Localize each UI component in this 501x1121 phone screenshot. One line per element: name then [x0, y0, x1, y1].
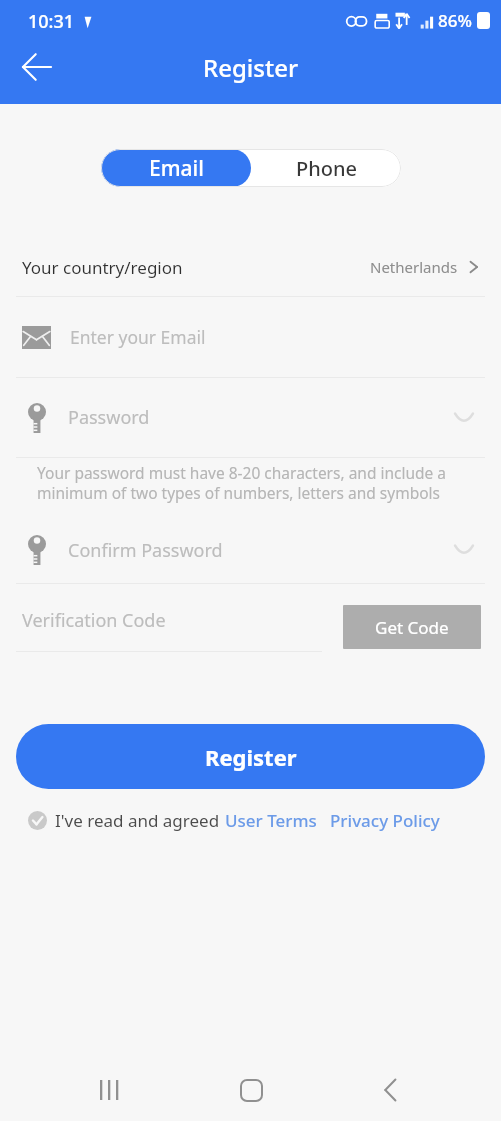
button[interactable]: Back	[9, 39, 65, 95]
staticText: Netherlands	[370, 257, 458, 277]
button[interactable]: Get Code	[343, 605, 481, 649]
button[interactable]: Enter your Email	[22, 297, 481, 377]
button[interactable]: Home	[223, 1062, 279, 1118]
button[interactable]: Back	[362, 1062, 418, 1118]
button[interactable]: Show password	[449, 403, 479, 433]
button[interactable]: Privacy Policy	[330, 809, 440, 832]
staticText: Your country/region	[22, 256, 183, 279]
button[interactable]: Email	[101, 149, 251, 187]
staticText: Password	[68, 405, 150, 430]
staticText: Enter your Email	[70, 325, 206, 349]
staticText: I've read and agreed	[55, 809, 220, 832]
staticText: Register	[205, 742, 297, 772]
staticText: 10:31	[28, 9, 75, 34]
staticText: Register	[203, 51, 299, 84]
staticText: 86%	[438, 9, 472, 32]
button[interactable]: Phone	[251, 149, 401, 187]
button[interactable]: Password	[28, 378, 479, 457]
button[interactable]: Show password	[449, 535, 479, 565]
button[interactable]: User Terms	[225, 809, 317, 832]
staticText: Phone	[296, 155, 357, 182]
staticText: Verification Code	[22, 608, 166, 633]
button[interactable]: Confirm Password	[28, 517, 479, 583]
staticText: Email	[149, 154, 204, 183]
staticText: Privacy Policy	[330, 809, 440, 832]
button[interactable]: Verification Code	[0, 584, 322, 651]
staticText: Get Code	[375, 616, 449, 639]
staticText: Confirm Password	[68, 538, 223, 563]
button[interactable]: Your country/region	[22, 242, 481, 292]
button[interactable]: Recent apps	[80, 1062, 136, 1118]
staticText: User Terms	[225, 809, 317, 832]
button[interactable]: Agree to terms	[28, 811, 47, 830]
staticText: Your password must have 8-20 characters,…	[37, 462, 463, 504]
button[interactable]: Register	[16, 724, 485, 789]
